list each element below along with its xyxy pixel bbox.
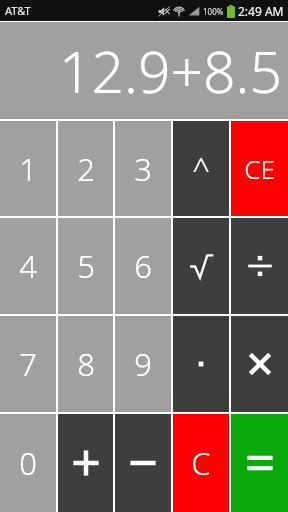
other: Multiply [248,352,272,376]
button[interactable]: C [173,414,229,512]
other: Minus [128,448,158,478]
button[interactable]: 9 [115,316,171,412]
staticText: ^ [192,148,210,190]
staticText: 0 [19,442,37,484]
other: Plus [71,448,101,478]
staticText: 5 [77,245,95,287]
button[interactable]: CE [231,121,288,216]
staticText: 12.9+8.5 [58,32,282,110]
button[interactable]: Divide [231,218,288,314]
button[interactable]: 6 [115,218,171,314]
staticText: AT&T [5,3,31,18]
staticText: 2 [77,148,95,190]
button[interactable]: ^ [173,121,229,216]
other: Equals [245,450,275,476]
button[interactable]: 5 [58,218,113,314]
staticText: 6 [134,245,152,287]
button[interactable]: 0 [0,414,56,512]
button[interactable]: 8 [58,316,113,412]
button[interactable]: Equals [231,414,288,512]
button[interactable]: 2 [58,121,113,216]
button[interactable]: Plus [58,414,113,512]
staticText: 3 [134,148,152,190]
staticText: 100% [203,6,224,17]
staticText: 8 [77,343,95,385]
button[interactable]: 1 [0,121,56,216]
staticText: 7 [19,343,37,385]
other: Divide [246,252,274,280]
button[interactable]: 3 [115,121,171,216]
staticText: 9 [134,343,152,385]
button[interactable]: Minus [115,414,171,512]
button[interactable]: Multiply [231,316,288,412]
staticText: 4 [19,245,37,287]
other: Decimal point [197,360,205,368]
button[interactable]: Decimal point [173,316,229,412]
staticText: 1 [19,148,37,190]
button[interactable]: 7 [0,316,56,412]
staticText: C [191,442,211,484]
staticText: CE [244,151,275,186]
button[interactable]: 4 [0,218,56,314]
button[interactable]: Square root [173,218,229,314]
staticText: 2:49 AM [238,3,284,19]
other: Square root [188,252,214,280]
